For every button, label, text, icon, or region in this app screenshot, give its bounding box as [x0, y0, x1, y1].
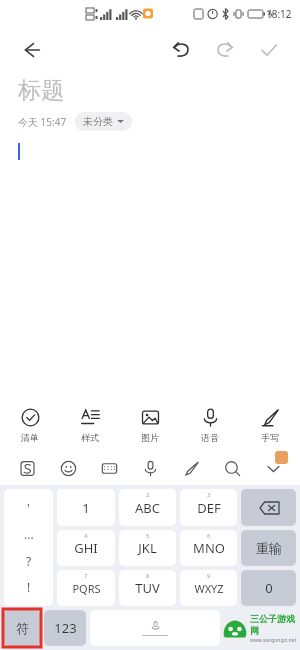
- staticText: JKL: [138, 539, 157, 557]
- button[interactable]: Back: [14, 33, 48, 67]
- staticText: 123: [54, 619, 77, 637]
- button[interactable]: 5: [119, 530, 176, 566]
- staticText: PQRS: [72, 581, 101, 596]
- button[interactable]: Undo: [164, 33, 198, 67]
- button[interactable]: Keyboard: [89, 451, 130, 485]
- button[interactable]: 0: [241, 570, 296, 606]
- staticText: 0: [265, 579, 273, 597]
- staticText: www.sangongzi.net: [250, 637, 297, 644]
- staticText: 重输: [256, 540, 282, 556]
- staticText: ': [27, 500, 30, 516]
- button[interactable]: 符: [4, 610, 40, 646]
- button[interactable]: Emoji: [48, 451, 89, 485]
- button[interactable]: Space: [90, 610, 220, 646]
- button[interactable]: Collapse: [253, 451, 294, 485]
- button[interactable]: 语音: [180, 399, 240, 451]
- staticText: WXYZ: [194, 581, 224, 596]
- staticText: 2: [146, 491, 150, 499]
- staticText: 今天 15:47: [18, 115, 67, 129]
- button[interactable]: 8: [119, 570, 176, 606]
- button[interactable]: 重输: [241, 530, 296, 566]
- button[interactable]: 7: [57, 570, 115, 606]
- staticText: ?: [26, 553, 32, 569]
- staticText: 符: [16, 620, 29, 636]
- staticText: 清单: [21, 432, 39, 443]
- button[interactable]: Search: [212, 451, 253, 485]
- button[interactable]: Done: [252, 33, 286, 67]
- staticText: 1: [82, 499, 90, 517]
- button[interactable]: 4: [57, 530, 115, 566]
- button[interactable]: 2: [119, 489, 176, 526]
- button[interactable]: 1: [57, 489, 115, 526]
- button[interactable]: Delete: [241, 489, 296, 526]
- staticText: 3: [207, 491, 211, 499]
- staticText: ABC: [135, 499, 160, 517]
- staticText: 手写: [261, 432, 279, 443]
- button[interactable]: 样式: [60, 399, 120, 451]
- staticText: 5: [146, 532, 150, 540]
- button[interactable]: 123: [44, 610, 86, 646]
- button[interactable]: 手写: [240, 399, 300, 451]
- button[interactable]: Voice: [130, 451, 171, 485]
- button[interactable]: Handwriting: [171, 451, 212, 485]
- staticText: 8: [146, 572, 150, 580]
- button[interactable]: 清单: [0, 399, 60, 451]
- staticText: 语音: [201, 432, 219, 443]
- button[interactable]: 未分类: [75, 112, 132, 131]
- button[interactable]: 3: [180, 489, 237, 526]
- staticText: DEF: [197, 499, 221, 517]
- staticText: TUV: [135, 579, 160, 597]
- button[interactable]: Sogou: [6, 451, 48, 485]
- staticText: !: [27, 579, 31, 595]
- button[interactable]: 9: [180, 570, 237, 606]
- button[interactable]: ': [4, 489, 53, 606]
- staticText: 6: [207, 532, 211, 540]
- staticText: 三公子游戏网: [250, 613, 298, 637]
- staticText: 图片: [141, 432, 159, 443]
- staticText: 9: [207, 572, 211, 580]
- staticText: 4: [84, 532, 88, 540]
- button[interactable]: 图片: [120, 399, 180, 451]
- button[interactable]: 6: [180, 530, 237, 566]
- staticText: 标题: [18, 76, 64, 105]
- staticText: 未分类: [83, 115, 113, 128]
- staticText: ...: [24, 526, 34, 542]
- staticText: 7: [84, 572, 88, 580]
- staticText: MNO: [193, 539, 225, 557]
- staticText: GHI: [74, 539, 98, 557]
- button[interactable]: Redo: [208, 33, 242, 67]
- staticText: 18:12: [266, 7, 292, 21]
- staticText: 样式: [81, 432, 99, 443]
